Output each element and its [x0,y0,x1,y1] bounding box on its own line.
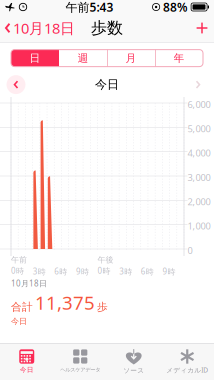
button[interactable]: ソース [107,343,160,380]
staticText: 3時 [119,266,132,277]
staticText: 9時 [76,266,89,277]
staticText: 週 [77,51,88,65]
staticText: 午前5:43 [65,0,113,15]
staticText: 午前 [11,255,27,265]
staticText: 今日 [20,366,34,374]
staticText: 今日 [95,77,119,92]
button[interactable]: 追加 [190,14,214,42]
staticText: 88% [163,0,188,15]
staticText: 6時 [54,266,67,277]
button[interactable]: ヘルスケアデータ [53,343,107,380]
button[interactable]: 前の日 [4,75,28,95]
staticText: 0 [187,244,192,256]
button[interactable]: 年 [155,50,203,67]
staticText: 月 [125,51,136,65]
button[interactable]: メディカルID [160,343,214,380]
staticText: 0時 [97,265,110,276]
staticText: 年 [173,51,184,65]
staticText: ヘルスケアデータ [60,366,100,373]
staticText: 今日 [11,316,27,326]
staticText: 5,000 [187,122,210,135]
staticText: 11,375 [35,290,95,315]
button[interactable]: 週 [59,50,107,67]
button[interactable]: 月 [107,50,155,67]
staticText: 午後 [97,255,113,265]
staticText: 2,000 [187,195,210,208]
staticText: 4,000 [187,147,210,159]
button[interactable]: 次の日 [186,75,210,95]
button[interactable]: 10月18日 [0,14,79,42]
staticText: 1,000 [187,220,210,232]
staticText: 日 [29,51,40,65]
staticText: 3,000 [187,171,210,183]
staticText: メディカルID [166,366,208,374]
staticText: 合計 [11,300,33,313]
staticText: 歩 [97,300,108,313]
staticText: 10月18日 [11,278,47,289]
staticText: 3時 [33,266,46,277]
staticText: 6,000 [187,98,210,110]
button[interactable]: 日 [11,50,59,67]
staticText: 0時 [11,265,24,276]
staticText: 9時 [162,266,175,277]
staticText: ソース [123,366,144,375]
button[interactable]: 今日 [0,343,53,380]
staticText: 6時 [141,266,154,277]
staticText: 歩数 [91,18,123,38]
staticText: 10月18日 [13,18,75,38]
